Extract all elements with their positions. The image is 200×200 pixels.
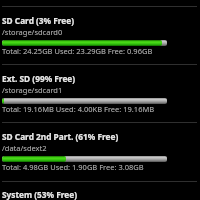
staticText: Ext. SD (99% Free) (2, 73, 76, 84)
staticText: System (53% Free) (2, 189, 78, 200)
button[interactable] (0, 123, 200, 180)
staticText: /storage/sdcard0 (2, 27, 63, 37)
staticText: Total: 4.98GB Used: 1.90GB Free: 3.08GB (2, 162, 144, 172)
button[interactable] (0, 182, 200, 200)
staticText: /storage/sdcard1 (2, 85, 63, 95)
staticText: Total: 19.16MB Used: 4.00KB Free: 19.16M… (2, 104, 155, 114)
staticText: SD Card (3% Free) (2, 15, 75, 26)
staticText: Total: 24.25GB Used: 23.29GB Free: 0.96G… (2, 46, 153, 56)
staticText: /data/sdext2 (2, 143, 47, 153)
staticText: SD Card 2nd Part. (61% Free) (2, 131, 119, 142)
button[interactable] (0, 7, 200, 64)
button[interactable] (0, 65, 200, 122)
